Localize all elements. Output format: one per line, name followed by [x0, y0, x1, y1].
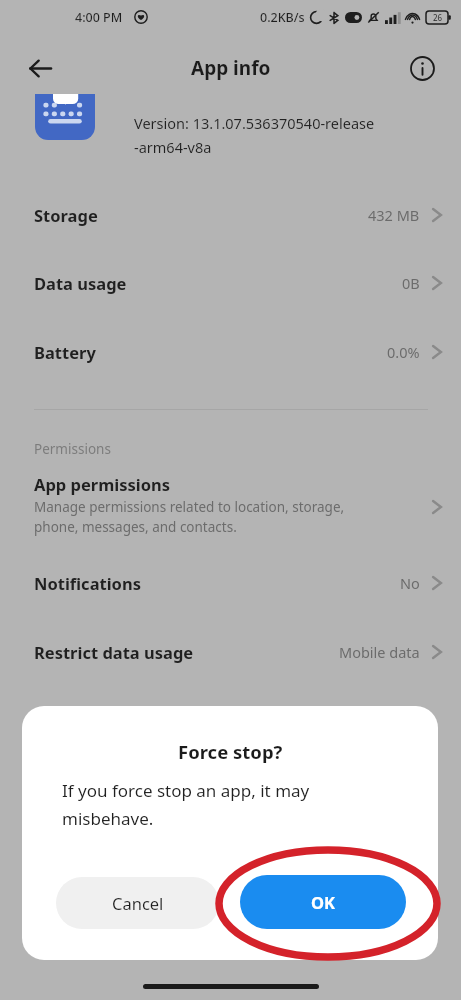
staticText: 4:00 PM: [75, 9, 123, 26]
staticText: Permissions: [34, 440, 111, 458]
staticText: Force stop?: [178, 739, 283, 764]
staticText: App info: [191, 55, 271, 81]
staticText: If you force stop an app, it may: [62, 779, 310, 802]
staticText: Manage permissions related to location, …: [34, 498, 345, 516]
staticText: 26: [433, 12, 443, 23]
button[interactable]: Storage: [0, 187, 461, 243]
staticText: 0B: [402, 273, 420, 293]
staticText: Notifications: [34, 572, 141, 594]
button[interactable]: Data usage: [0, 255, 461, 311]
staticText: No: [400, 573, 420, 593]
staticText: Mobile data: [339, 642, 420, 662]
button[interactable]: OK: [240, 875, 406, 929]
staticText: Restrict data usage: [34, 641, 194, 663]
button[interactable]: Notifications: [0, 555, 461, 611]
staticText: phone, messages, and contacts.: [34, 518, 237, 536]
button[interactable]: App permissions: [0, 468, 461, 546]
staticText: Battery: [34, 341, 96, 363]
button[interactable]: App details: [399, 45, 445, 91]
staticText: Cancel: [112, 892, 164, 914]
staticText: App permissions: [34, 473, 171, 495]
staticText: misbehave.: [62, 807, 154, 830]
staticText: 432 MB: [368, 205, 420, 225]
button[interactable]: Restrict data usage: [0, 624, 461, 680]
staticText: Data usage: [34, 272, 127, 294]
staticText: Storage: [34, 204, 98, 226]
button[interactable]: Back: [14, 42, 66, 94]
button[interactable]: Cancel: [56, 877, 219, 929]
staticText: -arm64-v8a: [134, 137, 212, 157]
button[interactable]: Battery: [0, 324, 461, 380]
staticText: OK: [311, 891, 336, 913]
staticText: 0.2KB/s: [260, 9, 305, 26]
staticText: 0.0%: [387, 342, 420, 362]
staticText: Version: 13.1.07.536370540-release: [134, 113, 375, 133]
